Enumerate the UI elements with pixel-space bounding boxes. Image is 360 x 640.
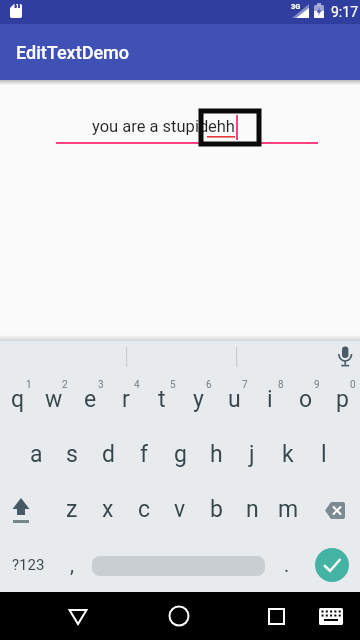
button[interactable] bbox=[330, 341, 360, 371]
button[interactable]: i bbox=[252, 372, 288, 427]
staticText: ?123 bbox=[12, 556, 45, 574]
staticText: g bbox=[174, 441, 187, 468]
staticText: q bbox=[11, 386, 25, 413]
staticText: h bbox=[210, 441, 223, 468]
staticText: r bbox=[122, 386, 130, 413]
staticText: 4 bbox=[134, 379, 140, 391]
staticText: 0 bbox=[350, 379, 356, 391]
staticText: v bbox=[174, 496, 186, 523]
staticText: 1 bbox=[26, 379, 32, 391]
button[interactable] bbox=[56, 100, 318, 146]
staticText: y bbox=[193, 386, 204, 413]
button[interactable]: p bbox=[324, 372, 360, 427]
staticText: k bbox=[282, 441, 294, 468]
staticText: m bbox=[278, 496, 299, 523]
staticText: b bbox=[210, 496, 223, 523]
button[interactable] bbox=[156, 592, 204, 640]
staticText: u bbox=[228, 386, 241, 413]
button[interactable]: n bbox=[234, 482, 270, 537]
button[interactable]: v bbox=[162, 482, 198, 537]
staticText: i bbox=[267, 386, 273, 413]
button[interactable]: z bbox=[54, 482, 90, 537]
staticText: 9 bbox=[314, 379, 320, 391]
staticText: d bbox=[102, 441, 115, 468]
staticText: , bbox=[70, 553, 74, 576]
button[interactable]: EditTextDemo bbox=[0, 24, 360, 80]
staticText: w bbox=[45, 386, 63, 413]
button[interactable]: m bbox=[270, 482, 306, 537]
staticText: e bbox=[84, 386, 97, 413]
button[interactable]: o bbox=[288, 372, 324, 427]
button[interactable]: y bbox=[180, 372, 216, 427]
button[interactable]: f bbox=[126, 427, 162, 482]
staticText: 7 bbox=[242, 379, 248, 391]
staticText: 3G bbox=[291, 2, 301, 11]
button[interactable] bbox=[252, 592, 300, 640]
staticText: n bbox=[246, 496, 259, 523]
button[interactable]: d bbox=[90, 427, 126, 482]
button[interactable] bbox=[317, 482, 357, 537]
button[interactable] bbox=[3, 482, 41, 537]
button[interactable]: t bbox=[144, 372, 180, 427]
staticText: 5 bbox=[170, 379, 176, 391]
button[interactable]: r bbox=[108, 372, 144, 427]
staticText: you are a stupid bbox=[92, 117, 209, 136]
staticText: 6 bbox=[206, 379, 212, 391]
button[interactable]: w bbox=[36, 372, 72, 427]
button[interactable]: c bbox=[126, 482, 162, 537]
staticText: z bbox=[66, 496, 78, 523]
staticText: 2 bbox=[62, 379, 68, 391]
staticText: a bbox=[30, 441, 43, 468]
button[interactable]: ?123 bbox=[0, 537, 56, 592]
button[interactable]: q bbox=[0, 372, 36, 427]
staticText: 9:17 bbox=[331, 4, 358, 20]
staticText: ehh bbox=[208, 117, 235, 136]
button[interactable]: k bbox=[270, 427, 306, 482]
button[interactable] bbox=[92, 556, 265, 576]
staticText: l bbox=[321, 441, 327, 468]
staticText: x bbox=[102, 496, 114, 523]
button[interactable]: u bbox=[216, 372, 252, 427]
button[interactable]: b bbox=[198, 482, 234, 537]
button[interactable]: h bbox=[198, 427, 234, 482]
button[interactable]: j bbox=[234, 427, 270, 482]
staticText: 8 bbox=[278, 379, 284, 391]
button[interactable]: s bbox=[54, 427, 90, 482]
button[interactable] bbox=[315, 548, 349, 582]
staticText: 3 bbox=[98, 379, 104, 391]
button[interactable]: , bbox=[54, 537, 90, 592]
staticText: EditTextDemo bbox=[16, 42, 129, 63]
button[interactable]: x bbox=[90, 482, 126, 537]
button[interactable]: e bbox=[72, 372, 108, 427]
staticText: . bbox=[284, 553, 290, 576]
staticText: f bbox=[140, 441, 148, 468]
button[interactable]: g bbox=[162, 427, 198, 482]
button[interactable] bbox=[54, 592, 102, 640]
staticText: j bbox=[249, 441, 255, 468]
button[interactable]: . bbox=[269, 537, 305, 592]
staticText: p bbox=[336, 386, 349, 413]
staticText: o bbox=[299, 386, 313, 413]
button[interactable]: a bbox=[18, 427, 54, 482]
staticText: c bbox=[138, 496, 151, 523]
button[interactable]: l bbox=[306, 427, 342, 482]
staticText: s bbox=[66, 441, 78, 468]
staticText: t bbox=[158, 386, 166, 413]
button[interactable] bbox=[312, 596, 352, 636]
